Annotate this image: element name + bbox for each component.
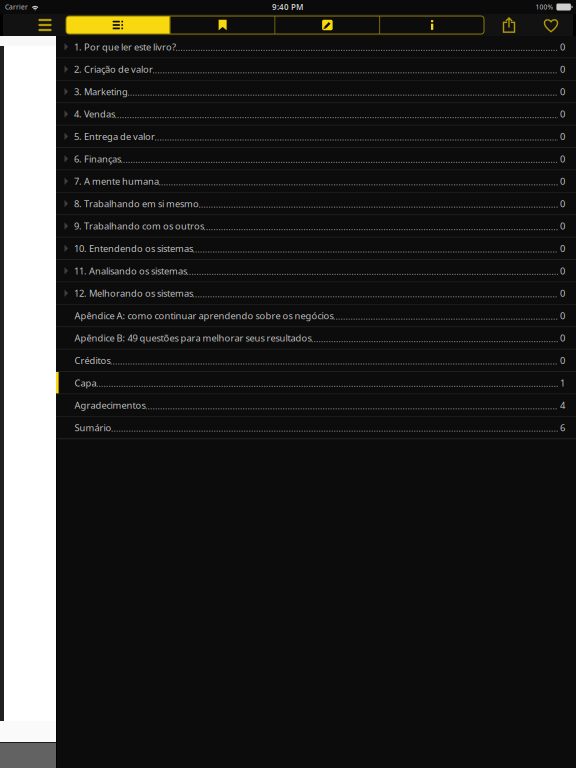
staticText: 0 <box>560 41 565 53</box>
staticText: 12. Melhorando os sistemas <box>74 287 193 299</box>
staticText: 0 <box>560 85 565 98</box>
staticText: 0 <box>560 130 565 143</box>
staticText: 0 <box>560 354 565 367</box>
button[interactable]: Bookmarks <box>171 16 274 34</box>
staticText: 2. Criação de valor <box>74 63 153 75</box>
staticText: 7. A mente humana <box>74 175 159 187</box>
button[interactable]: 12. Melhorando os sistemas <box>56 282 576 304</box>
button[interactable]: Apêndice A: como continuar aprendendo so… <box>56 305 576 326</box>
button[interactable]: 11. Analisando os sistemas <box>56 260 576 282</box>
button[interactable]: 9. Trabalhando com os outros <box>56 215 576 237</box>
staticText: 9. Trabalhando com os outros <box>74 220 204 232</box>
staticText: 6. Finanças <box>74 153 121 165</box>
button[interactable]: Capa <box>56 372 576 394</box>
staticText: Capa <box>75 377 97 389</box>
staticText: 5. Entrega de valor <box>74 130 155 143</box>
staticText: 10. Entendendo os sistemas <box>74 242 193 255</box>
staticText: 8. Trabalhando em si mesmo <box>74 197 199 210</box>
staticText: 4 <box>560 399 565 411</box>
staticText: 1. Por que ler este livro? <box>74 41 176 53</box>
staticText: 1 <box>560 377 565 389</box>
staticText: Carrier <box>5 3 28 11</box>
button[interactable]: Contents <box>66 16 170 34</box>
button[interactable]: 7. A mente humana <box>56 170 576 192</box>
staticText: 0 <box>560 242 565 255</box>
staticText: 0 <box>560 332 565 344</box>
button[interactable]: 6. Finanças <box>56 148 576 170</box>
button[interactable]: Menu <box>33 14 57 36</box>
button[interactable]: 3. Marketing <box>56 81 576 102</box>
button[interactable]: Info <box>380 16 484 34</box>
staticText: 11. Analisando os sistemas <box>74 265 187 277</box>
staticText: 6 <box>560 421 565 434</box>
button[interactable]: 8. Trabalhando em si mesmo <box>56 193 576 214</box>
staticText: 0 <box>560 309 565 322</box>
button[interactable]: Share <box>495 14 523 36</box>
button[interactable]: Favorite <box>538 14 564 36</box>
staticText: 0 <box>560 265 565 277</box>
button[interactable]: 10. Entendendo os sistemas <box>56 238 576 259</box>
staticText: 9:40 PM <box>272 2 303 12</box>
button[interactable]: 5. Entrega de valor <box>56 126 576 147</box>
staticText: Créditos <box>75 354 111 367</box>
button[interactable]: Notes <box>275 16 379 34</box>
staticText: Sumário <box>75 421 112 434</box>
staticText: Agradecimentos <box>75 399 146 411</box>
staticText: 3. Marketing <box>74 85 128 98</box>
staticText: 0 <box>560 153 565 165</box>
staticText: 100% <box>535 3 553 11</box>
staticText: 0 <box>560 108 565 120</box>
button[interactable]: Sumário <box>56 417 576 438</box>
staticText: 0 <box>560 287 565 299</box>
button[interactable]: 2. Criação de valor <box>56 58 576 80</box>
staticText: 0 <box>560 63 565 75</box>
staticText: 4. Vendas <box>74 108 115 120</box>
staticText: 0 <box>560 220 565 232</box>
staticText: Apêndice B: 49 questões para melhorar se… <box>75 332 312 344</box>
staticText: 0 <box>560 197 565 210</box>
button[interactable]: Agradecimentos <box>56 394 576 416</box>
button[interactable]: Apêndice B: 49 questões para melhorar se… <box>56 327 576 349</box>
staticText: 0 <box>560 175 565 187</box>
staticText: Apêndice A: como continuar aprendendo so… <box>75 309 334 322</box>
button[interactable]: Créditos <box>56 350 576 371</box>
button[interactable]: 4. Vendas <box>56 103 576 125</box>
button[interactable]: 1. Por que ler este livro? <box>56 36 576 58</box>
